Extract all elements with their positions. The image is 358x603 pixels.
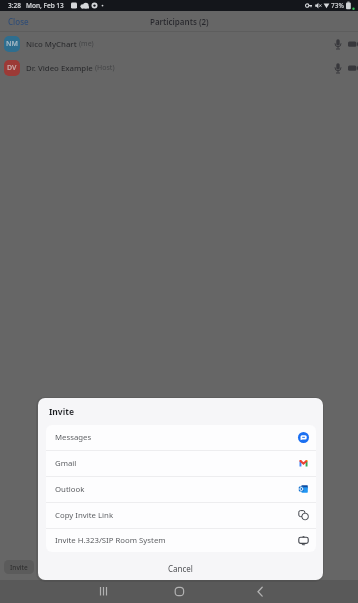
button[interactable]	[171, 583, 188, 600]
staticText: Mon, Feb 13	[26, 1, 64, 10]
staticText: Outlook	[55, 484, 85, 495]
button[interactable]: DV	[0, 56, 358, 80]
staticText: Dr. Video Example	[26, 63, 93, 74]
button[interactable]	[251, 583, 268, 600]
staticText: Cancel	[168, 563, 193, 574]
staticText: Nico MyChart	[26, 39, 77, 50]
staticText: Close	[8, 16, 29, 27]
staticText: Invite	[49, 406, 74, 418]
staticText: (Host)	[95, 63, 115, 73]
button[interactable]	[95, 583, 112, 600]
staticText: Invite	[10, 563, 28, 572]
staticText: Copy Invite Link	[55, 510, 114, 521]
staticText: Messages	[55, 432, 92, 443]
staticText: Participants (2)	[150, 16, 209, 27]
button[interactable]: Copy Invite Link	[46, 503, 316, 528]
staticText: Invite H.323/SIP Room System	[55, 535, 166, 546]
staticText: DV	[7, 63, 17, 73]
staticText: 3:28	[8, 1, 21, 10]
button[interactable]: Invite H.323/SIP Room System	[46, 529, 316, 552]
button[interactable]: Close	[8, 16, 29, 27]
button[interactable]: NM	[0, 32, 358, 56]
button[interactable]: Cancel	[38, 555, 323, 580]
staticText: 73%	[331, 1, 344, 10]
staticText: Gmail	[55, 458, 77, 469]
staticText: (me)	[79, 39, 94, 49]
button[interactable]: Gmail	[46, 451, 316, 476]
staticText: NM	[6, 39, 19, 49]
button[interactable]: Messages	[46, 425, 316, 450]
button[interactable]: Outlook	[46, 477, 316, 502]
button[interactable]: Invite	[4, 560, 34, 574]
